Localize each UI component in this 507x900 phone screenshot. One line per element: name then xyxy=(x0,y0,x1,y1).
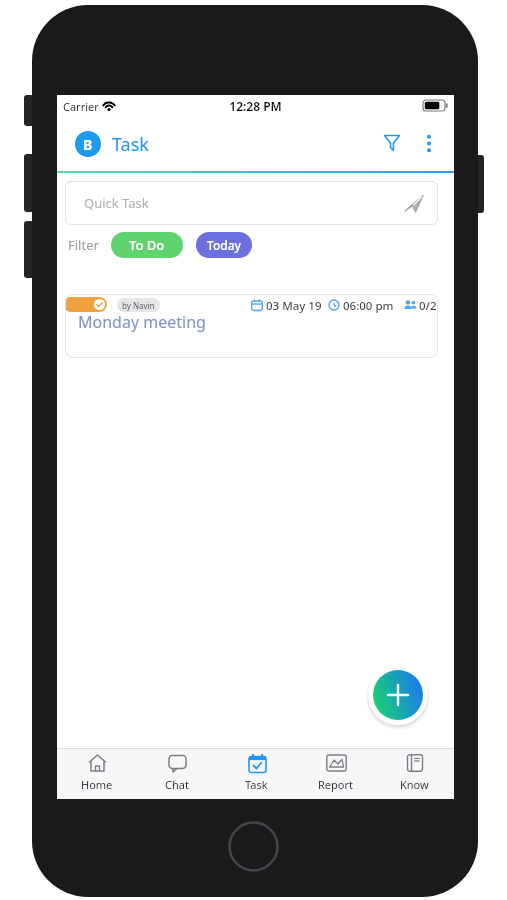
button[interactable] xyxy=(366,663,430,727)
staticText: Task xyxy=(245,777,268,792)
staticText: Monday meeting xyxy=(78,311,206,333)
staticText: Know xyxy=(400,777,429,792)
staticText: by Navin xyxy=(122,300,155,311)
button[interactable]: by Navin xyxy=(65,294,438,358)
staticText: Today xyxy=(207,237,241,253)
staticText: Filter xyxy=(68,236,99,254)
button[interactable]: To Do xyxy=(111,232,183,258)
staticText: 12:28 PM xyxy=(57,98,454,114)
button[interactable]: B xyxy=(75,131,101,157)
staticText: To Do xyxy=(129,236,165,254)
staticText: B xyxy=(83,135,93,154)
button[interactable]: Know xyxy=(375,753,454,799)
button[interactable]: Quick Task xyxy=(65,181,438,225)
button[interactable] xyxy=(425,135,433,152)
staticText: Quick Task xyxy=(84,194,149,212)
button[interactable]: Report xyxy=(296,753,375,799)
button[interactable]: Home xyxy=(57,753,137,799)
staticText: Home xyxy=(81,777,113,792)
staticText: Report xyxy=(318,777,353,792)
staticText: Task xyxy=(112,132,149,157)
button[interactable]: Task xyxy=(217,753,296,799)
button[interactable]: Chat xyxy=(137,753,217,799)
button[interactable]: Today xyxy=(196,232,252,258)
staticText: 03 May 19 xyxy=(266,298,322,314)
staticText: Chat xyxy=(165,777,189,792)
button[interactable] xyxy=(384,135,401,152)
staticText: 06:00 pm xyxy=(343,298,394,314)
staticText: 0/2 xyxy=(419,298,437,314)
staticText: Carrier xyxy=(63,99,99,114)
